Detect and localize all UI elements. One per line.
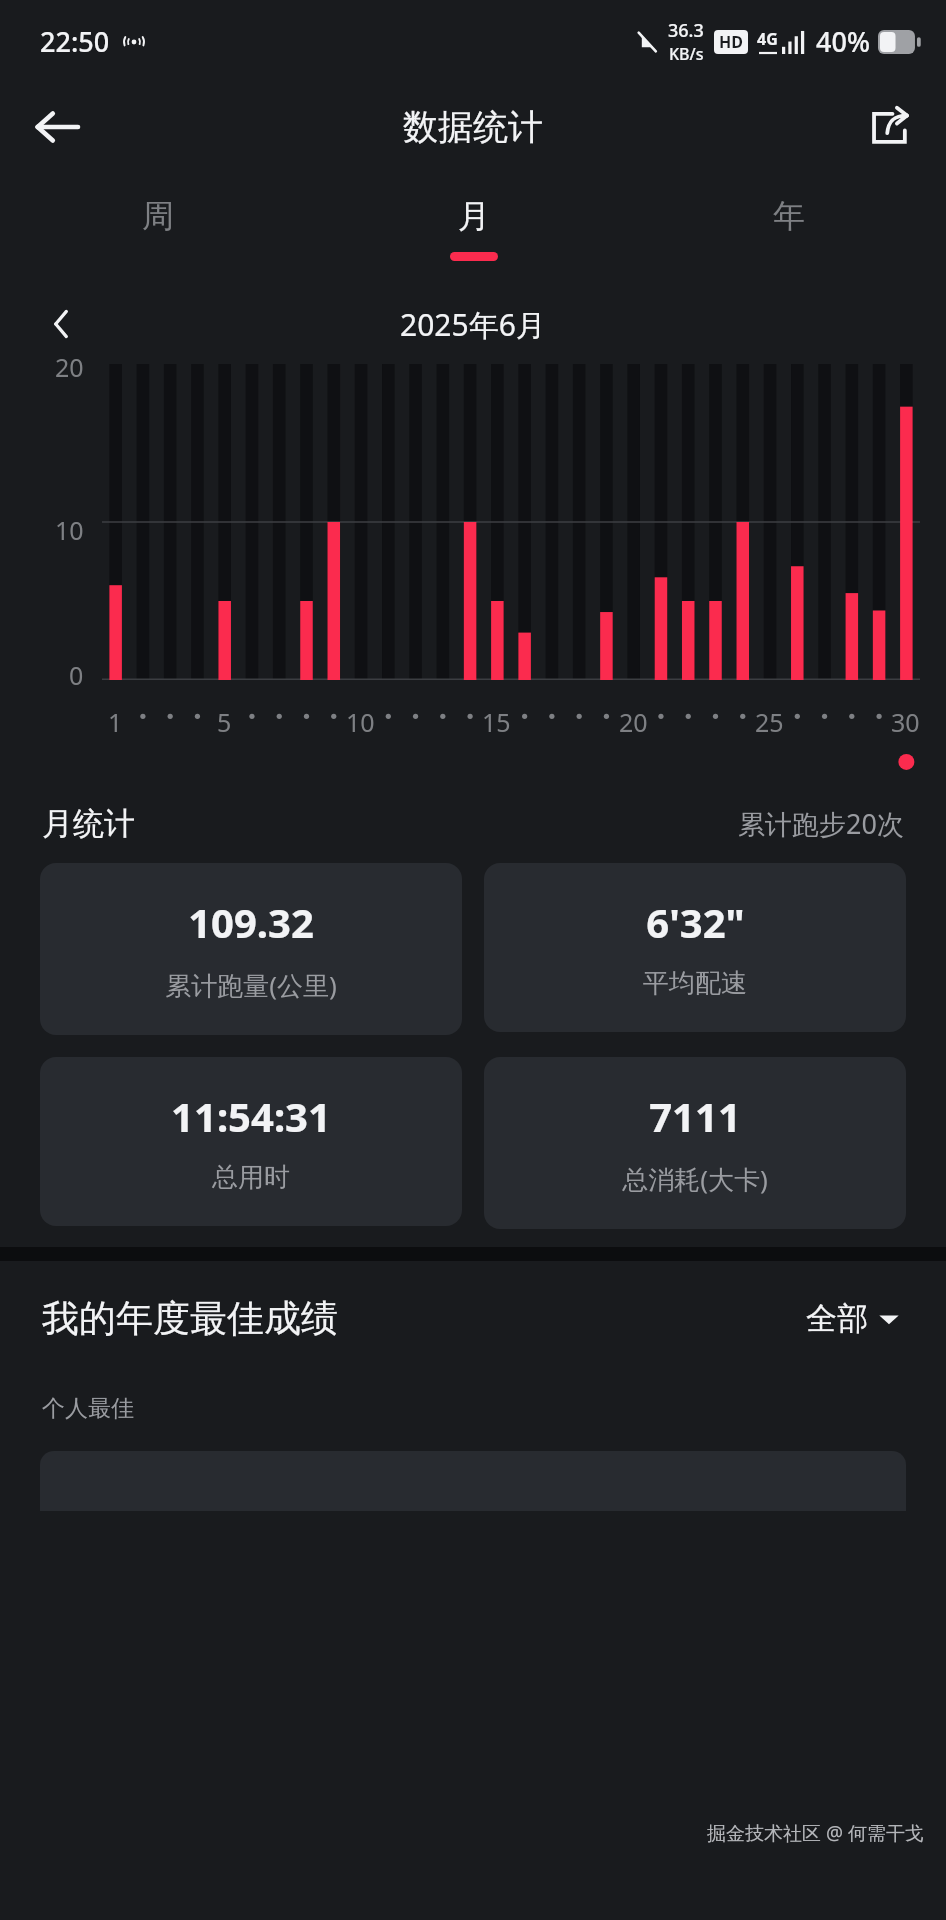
button[interactable]: 月 [316, 172, 631, 284]
staticText: 累计跑量(公里) [165, 967, 337, 1003]
staticText: 40% [816, 23, 870, 60]
button[interactable]: 7111 [484, 1057, 906, 1229]
staticText: 1 [108, 705, 123, 739]
button[interactable]: Back [22, 92, 92, 162]
button[interactable]: Share [854, 92, 924, 162]
staticText: 周 [142, 196, 174, 236]
staticText: 0 [69, 658, 84, 692]
staticText: 月 [458, 196, 490, 236]
staticText: 累计跑步20次 [738, 805, 904, 842]
staticText: 总用时 [212, 1161, 290, 1194]
staticText: 10 [55, 513, 84, 547]
button[interactable]: 6'32" [484, 863, 906, 1032]
staticText: 36.3 [668, 18, 704, 43]
button[interactable]: 109.32 [40, 863, 462, 1035]
staticText: 掘金技术社区 @ 何需干戈 [707, 1820, 924, 1846]
staticText: 个人最佳 [42, 1394, 134, 1423]
staticText: 30 [891, 705, 920, 739]
staticText: 7111 [649, 1089, 741, 1143]
staticText: 我的年度最佳成绩 [42, 1295, 338, 1342]
button[interactable]: Previous month [34, 295, 92, 353]
staticText: KB/s [669, 43, 704, 65]
staticText: 15 [482, 705, 511, 739]
button[interactable]: 周 [0, 172, 316, 284]
staticText: HD [719, 31, 743, 53]
staticText: 20 [619, 705, 648, 739]
staticText: 22:50 [40, 23, 110, 60]
staticText: 25 [755, 705, 784, 739]
staticText: 5 [217, 705, 232, 739]
button[interactable]: 全部 [802, 1295, 904, 1342]
staticText: 月统计 [42, 804, 135, 843]
button[interactable]: 年 [631, 172, 946, 284]
staticText: 4G [757, 28, 778, 50]
staticText: 平均配速 [643, 967, 747, 1000]
staticText: 10 [346, 705, 375, 739]
staticText: 2025年6月 [400, 304, 546, 345]
staticText: 数据统计 [403, 105, 543, 149]
staticText: 6'32" [646, 895, 745, 949]
staticText: 年 [773, 196, 805, 236]
staticText: 11:54:31 [171, 1089, 331, 1143]
staticText: 20 [55, 350, 84, 384]
staticText: 109.32 [188, 895, 314, 949]
button[interactable]: 11:54:31 [40, 1057, 462, 1226]
staticText: 总消耗(大卡) [622, 1161, 768, 1197]
staticText: 全部 [806, 1299, 868, 1338]
